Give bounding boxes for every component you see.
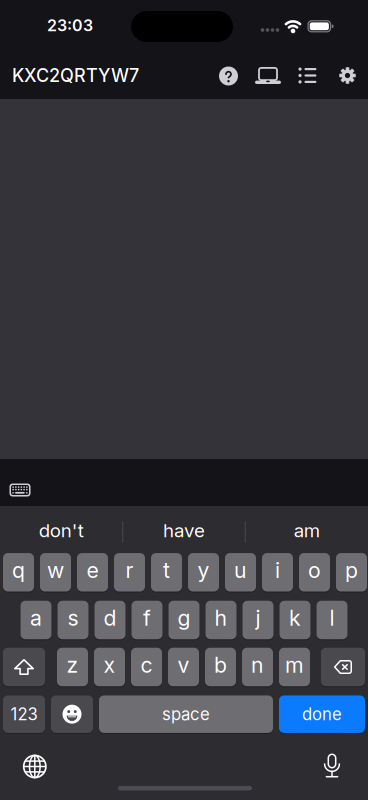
button[interactable]: r xyxy=(114,553,145,591)
staticText: r xyxy=(125,557,133,583)
button[interactable]: e xyxy=(77,553,108,591)
staticText: v xyxy=(177,652,189,678)
staticText: don't xyxy=(39,519,84,542)
staticText: q xyxy=(12,557,25,583)
button[interactable]: h xyxy=(205,601,236,639)
staticText: space xyxy=(162,704,210,724)
button[interactable]: done xyxy=(279,695,365,733)
staticText: KXC2QRTYW7 xyxy=(12,65,139,86)
staticText: have xyxy=(163,519,205,542)
button[interactable]: a xyxy=(20,601,51,639)
staticText: w xyxy=(47,557,64,583)
staticText: p xyxy=(345,557,358,583)
staticText: f xyxy=(143,605,151,631)
staticText: c xyxy=(140,652,152,678)
button[interactable]: d xyxy=(94,601,125,639)
staticText: am xyxy=(294,519,320,542)
button[interactable]: z xyxy=(57,648,88,686)
staticText: b xyxy=(214,652,227,678)
button[interactable]: space xyxy=(99,695,273,733)
button[interactable]: Hide Keyboard xyxy=(6,479,34,501)
staticText: o xyxy=(308,557,321,583)
staticText: u xyxy=(234,557,247,583)
staticText: z xyxy=(66,652,78,678)
staticText: d xyxy=(103,605,116,631)
staticText: h xyxy=(214,605,227,631)
button[interactable]: y xyxy=(188,553,219,591)
staticText: a xyxy=(30,605,42,631)
button[interactable]: c xyxy=(131,648,162,686)
button[interactable]: Emoji xyxy=(51,695,93,733)
button[interactable]: b xyxy=(205,648,236,686)
button[interactable]: Menu xyxy=(291,61,323,89)
staticText: y xyxy=(197,557,209,583)
button[interactable]: i xyxy=(262,553,293,591)
button[interactable]: o xyxy=(299,553,330,591)
staticText: j xyxy=(255,605,260,631)
button[interactable]: k xyxy=(279,601,310,639)
staticText: 23:03 xyxy=(47,16,93,35)
button[interactable]: f xyxy=(131,601,162,639)
button[interactable]: Screens xyxy=(252,61,284,89)
staticText: done xyxy=(302,704,342,724)
staticText: s xyxy=(67,605,78,631)
button[interactable]: Next Keyboard xyxy=(18,749,52,783)
button[interactable]: Shift xyxy=(3,648,45,686)
button[interactable]: w xyxy=(40,553,71,591)
staticText: n xyxy=(251,652,264,678)
button[interactable]: Settings xyxy=(331,61,363,89)
staticText: 123 xyxy=(10,704,37,724)
staticText: l xyxy=(329,605,334,631)
button[interactable]: u xyxy=(225,553,256,591)
button[interactable]: Dictation xyxy=(317,748,347,782)
button[interactable]: l xyxy=(316,601,347,639)
staticText: t xyxy=(163,557,170,583)
button[interactable]: Delete xyxy=(321,648,365,686)
staticText: k xyxy=(289,605,301,631)
staticText: m xyxy=(285,652,304,678)
button[interactable]: Help xyxy=(214,62,242,90)
button[interactable]: s xyxy=(57,601,88,639)
button[interactable]: have xyxy=(124,508,244,552)
button[interactable]: m xyxy=(279,648,310,686)
button[interactable]: q xyxy=(3,553,34,591)
staticText: i xyxy=(275,557,280,583)
button[interactable]: 123 xyxy=(3,695,45,733)
button[interactable]: x xyxy=(94,648,125,686)
staticText: e xyxy=(86,557,98,583)
button[interactable]: g xyxy=(168,601,199,639)
button[interactable]: am xyxy=(247,508,367,552)
button[interactable]: v xyxy=(168,648,199,686)
button[interactable]: n xyxy=(242,648,273,686)
button[interactable]: j xyxy=(242,601,273,639)
staticText: x xyxy=(103,652,115,678)
button[interactable]: t xyxy=(151,553,182,591)
button[interactable]: p xyxy=(336,553,367,591)
button[interactable]: don't xyxy=(1,508,121,552)
staticText: g xyxy=(177,605,190,631)
